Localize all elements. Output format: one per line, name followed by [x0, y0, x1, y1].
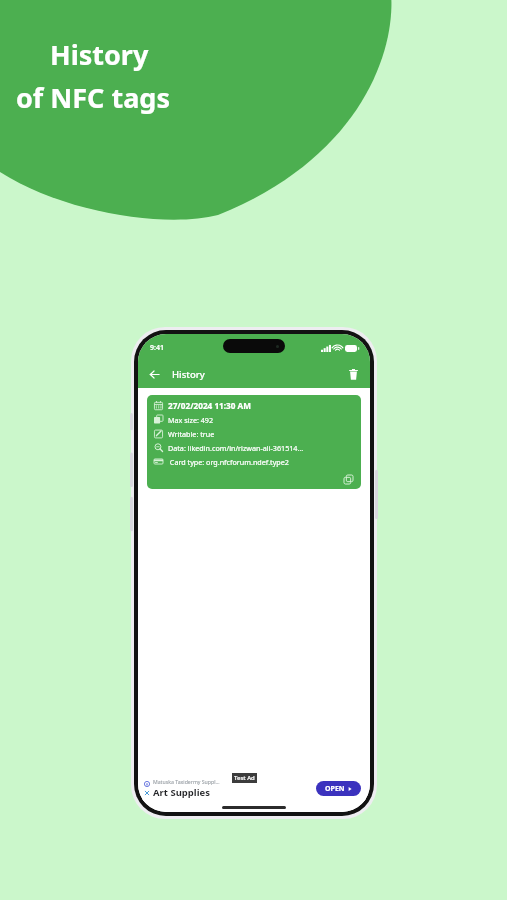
- button[interactable]: OPEN: [316, 781, 361, 796]
- staticText: Matuska Taxidermy Suppl…: [153, 778, 220, 785]
- button[interactable]: Back: [144, 364, 164, 384]
- staticText: Test Ad: [234, 774, 255, 782]
- staticText: Art Supplies: [153, 786, 210, 799]
- staticText: OPEN: [325, 784, 345, 794]
- staticText: 9:41: [150, 343, 164, 353]
- staticText: History: [172, 368, 205, 381]
- staticText: 27/02/2024 11:30 AM: [168, 400, 251, 411]
- staticText: Data: likedin.com/in/rizwan-ali-361514…: [168, 443, 304, 453]
- button[interactable]: 27/02/2024 11:30 AM: [147, 395, 361, 489]
- button[interactable]: Copy: [341, 472, 355, 486]
- button[interactable]: Delete all: [343, 364, 363, 384]
- staticText: History: [50, 36, 149, 73]
- staticText: of NFC tags: [16, 79, 170, 116]
- staticText: Writable: true: [168, 429, 215, 439]
- staticText: Max size: 492: [168, 415, 214, 425]
- staticText: Card type: org.nfcforum.ndef.type2: [168, 457, 289, 467]
